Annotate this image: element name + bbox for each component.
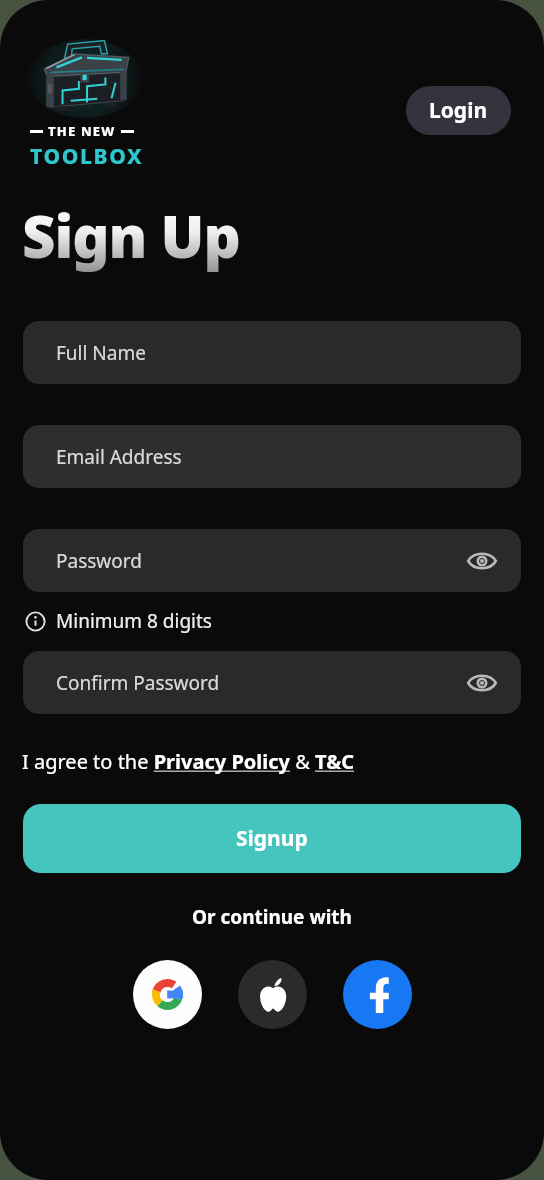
staticText: Minimum 8 digits [56,608,212,634]
staticText: TOOLBOX [30,142,144,171]
button[interactable]: Password [23,529,521,592]
button[interactable]: Login [406,86,511,135]
staticText: Full Name [56,340,146,366]
button[interactable]: Full Name [23,321,521,384]
button[interactable]: Show password [465,544,499,578]
staticText: THE NEW [48,122,116,140]
staticText: Password [56,548,142,574]
button[interactable]: Continue with Apple [238,960,307,1029]
button[interactable]: Signup [23,804,521,873]
staticText: Signup [236,824,308,853]
staticText: Confirm Password [56,670,220,696]
button[interactable]: Continue with Google [133,960,202,1029]
staticText: Login [429,96,488,125]
staticText: Sign Up [22,196,240,275]
staticText: Or continue with [192,904,352,930]
staticText: I agree to the Privacy Policy & T&C [22,748,354,775]
button[interactable]: Email Address [23,425,521,488]
button[interactable]: Confirm Password [23,651,521,714]
button[interactable]: Show password [465,666,499,700]
button[interactable]: Continue with Facebook [343,960,412,1029]
button[interactable]: I agree to the Privacy Policy & T&C [22,748,522,775]
staticText: Email Address [56,444,182,470]
